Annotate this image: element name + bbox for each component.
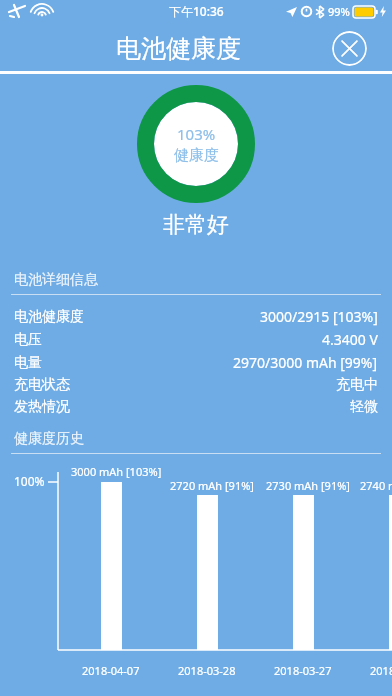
staticText: 2018-03-27: [274, 663, 332, 678]
staticText: 99%: [328, 4, 350, 19]
button[interactable]: 充电状态: [0, 374, 392, 396]
staticText: 电压: [14, 331, 42, 349]
staticText: 2018: [370, 663, 392, 678]
staticText: 2018-04-07: [82, 663, 140, 678]
staticText: 2740 m: [360, 478, 392, 493]
button[interactable]: 电池健康度: [0, 305, 392, 328]
button[interactable]: 电量: [0, 351, 392, 374]
staticText: 充电中: [336, 376, 378, 394]
staticText: 发热情况: [14, 398, 70, 416]
staticText: 2018-03-28: [178, 663, 236, 678]
staticText: 健康度历史: [14, 430, 84, 448]
staticText: 电池健康度: [116, 33, 241, 64]
staticText: 3000 mAh [103%]: [71, 464, 162, 479]
button[interactable]: 发热情况: [0, 396, 392, 418]
button[interactable]: 电压: [0, 328, 392, 351]
staticText: 电池详细信息: [14, 271, 98, 289]
staticText: 下午10:36: [169, 3, 224, 19]
staticText: 3000/2915 [103%]: [260, 307, 378, 326]
staticText: 2720 mAh [91%]: [170, 478, 254, 493]
staticText: 4.3400 V: [322, 330, 378, 349]
staticText: 电池健康度: [14, 308, 84, 326]
staticText: 103%: [177, 124, 216, 144]
button[interactable]: Close: [332, 31, 367, 66]
staticText: 充电状态: [14, 376, 70, 394]
staticText: 电量: [14, 354, 42, 372]
staticText: 轻微: [350, 398, 378, 416]
staticText: 2970/3000 mAh [99%]: [233, 353, 378, 372]
staticText: 非常好: [0, 211, 392, 239]
staticText: 健康度: [174, 146, 219, 165]
staticText: 100%: [14, 473, 45, 489]
staticText: 2730 mAh [91%]: [266, 478, 350, 493]
